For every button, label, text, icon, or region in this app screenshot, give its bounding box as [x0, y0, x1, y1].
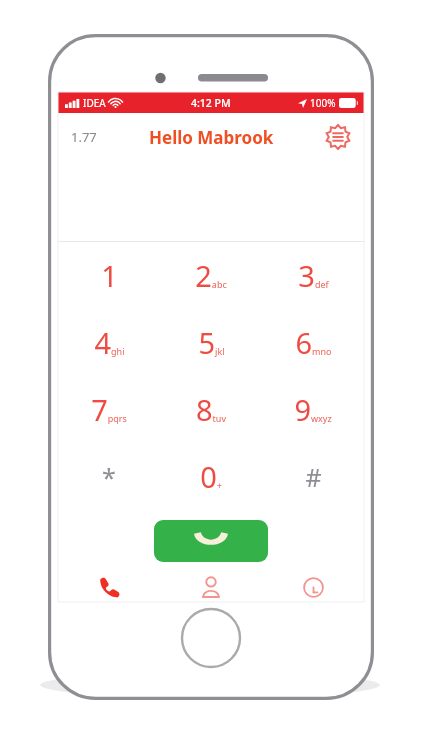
staticText: IDEA — [83, 96, 106, 110]
button[interactable]: 6mno — [262, 309, 364, 376]
button[interactable]: Settings menu — [320, 119, 356, 155]
staticText: 7pqrs — [91, 390, 127, 429]
button[interactable]: Keypad — [58, 572, 160, 602]
staticText: 1.77 — [71, 128, 97, 146]
button[interactable]: 4ghi — [58, 309, 160, 376]
button[interactable]: 7pqrs — [58, 376, 160, 443]
staticText: 3def — [298, 256, 329, 295]
staticText: 6mno — [295, 323, 332, 362]
button[interactable]: # — [262, 443, 364, 510]
staticText: Hello Mabrook — [149, 126, 274, 149]
button[interactable]: 8tuv — [160, 376, 262, 443]
button[interactable]: Contacts — [160, 572, 262, 602]
button[interactable]: * — [58, 443, 160, 510]
staticText: # — [305, 460, 322, 494]
button[interactable]: Recent calls — [262, 572, 364, 602]
button[interactable]: 9wxyz — [262, 376, 364, 443]
button[interactable]: 1 — [58, 242, 160, 309]
button[interactable]: 2abc — [160, 242, 262, 309]
staticText: 2abc — [195, 256, 227, 295]
staticText: 5jkl — [198, 323, 225, 362]
button[interactable]: 5jkl — [160, 309, 262, 376]
staticText: 8tuv — [196, 390, 226, 429]
staticText: * — [102, 460, 116, 494]
staticText: 1 — [101, 256, 118, 295]
button[interactable]: 3def — [262, 242, 364, 309]
staticText: 4ghi — [94, 323, 125, 362]
staticText: 9wxyz — [294, 390, 332, 429]
button[interactable]: Call — [154, 520, 268, 562]
button[interactable]: 0+ — [160, 443, 262, 510]
staticText: 4:12 PM — [191, 96, 231, 110]
staticText: 100% — [310, 96, 336, 110]
staticText: 0+ — [200, 457, 222, 496]
